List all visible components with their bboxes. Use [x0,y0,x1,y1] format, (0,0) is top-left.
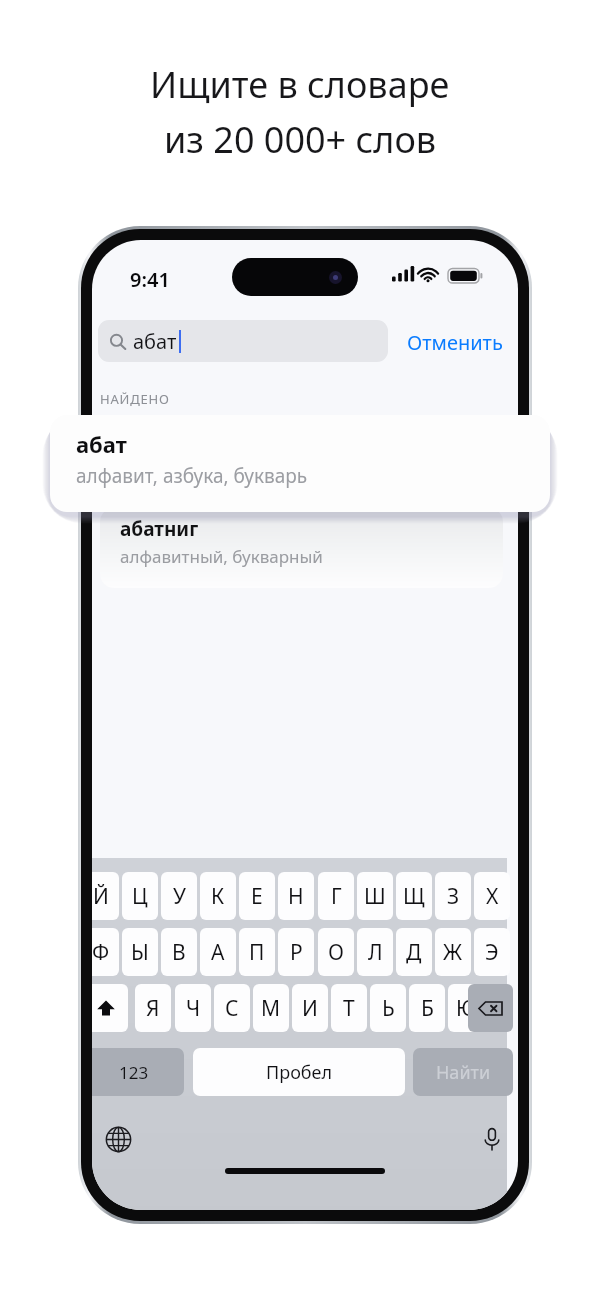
button[interactable]: И [292,984,328,1032]
staticText: У [173,882,186,911]
button[interactable]: Н [278,872,314,920]
staticText: К [211,882,225,911]
button[interactable]: Пробел [193,1048,405,1096]
button[interactable]: Й [92,872,119,920]
staticText: алфавитный, букварный [120,545,323,568]
button[interactable]: Найти [413,1048,513,1096]
button[interactable]: 123 [92,1048,184,1096]
staticText: З [447,882,460,911]
button[interactable]: В [161,928,197,976]
button[interactable]: А [200,928,236,976]
staticText: абат [76,429,127,459]
staticText: Ищите в словаре [150,60,450,109]
staticText: алфавит, азбука, букварь [76,463,308,489]
staticText: О [328,938,344,967]
button[interactable]: абат [50,415,550,512]
button[interactable]: Б [409,984,445,1032]
staticText: Я [146,994,160,1023]
staticText: Е [251,882,263,911]
button[interactable]: Я [135,984,171,1032]
button[interactable]: М [253,984,289,1032]
staticText: Пробел [266,1060,333,1085]
button[interactable]: Щ [396,872,432,920]
button[interactable]: Ф [92,928,119,976]
button[interactable]: Отменить [400,326,510,358]
button[interactable]: Г [318,872,354,920]
button[interactable]: абатниг [100,508,503,588]
staticText: Ж [443,938,463,967]
button[interactable]: абат [98,320,388,362]
staticText: А [211,938,225,967]
staticText: НАЙДЕНО [100,390,170,408]
button[interactable]: Ш [357,872,393,920]
staticText: В [172,938,186,967]
button[interactable]: П [239,928,275,976]
staticText: Т [343,994,355,1023]
button[interactable]: Shift [92,984,128,1032]
button[interactable]: Ы [122,928,158,976]
staticText: П [249,938,265,967]
button[interactable]: О [318,928,354,976]
staticText: Э [485,938,499,967]
staticText: Ы [131,938,149,967]
staticText: Л [368,938,383,967]
button[interactable]: Э [474,928,510,976]
button[interactable]: Ю [448,984,484,1032]
button[interactable]: З [435,872,471,920]
staticText: Щ [403,882,425,911]
button[interactable]: Е [239,872,275,920]
staticText: из 20 000+ слов [164,115,437,164]
button[interactable]: Л [357,928,393,976]
staticText: М [261,994,281,1023]
staticText: абатниг [120,516,199,542]
button[interactable]: К [200,872,236,920]
button[interactable]: Backspace [468,984,513,1032]
staticText: Ш [364,882,386,911]
button[interactable]: Х [474,872,510,920]
button[interactable]: Д [396,928,432,976]
staticText: Н [288,882,304,911]
button[interactable]: С [214,984,250,1032]
button[interactable]: Р [278,928,314,976]
staticText: Д [406,938,422,967]
staticText: Б [421,994,434,1023]
staticText: И [302,994,318,1023]
button[interactable]: Ц [122,872,158,920]
staticText: Х [486,882,499,911]
button[interactable]: Ж [435,928,471,976]
staticText: Ч [186,994,201,1023]
staticText: Р [290,938,303,967]
staticText: 9:41 [130,266,170,293]
button[interactable]: Ч [175,984,211,1032]
button[interactable]: Ь [370,984,406,1032]
staticText: Ю [456,994,477,1023]
staticText: Найти [436,1060,491,1085]
staticText: Й [93,882,109,911]
staticText: Г [331,882,342,911]
staticText: Ф [92,938,110,967]
staticText: абат [133,328,177,355]
button[interactable]: Dictation [471,1118,513,1160]
button[interactable]: Change keyboard [97,1118,139,1160]
staticText: 123 [119,1061,149,1084]
button[interactable]: Т [331,984,367,1032]
staticText: Отменить [407,329,503,356]
staticText: Ь [382,994,395,1023]
staticText: Ц [132,882,148,911]
button[interactable]: У [161,872,197,920]
staticText: С [225,994,239,1023]
